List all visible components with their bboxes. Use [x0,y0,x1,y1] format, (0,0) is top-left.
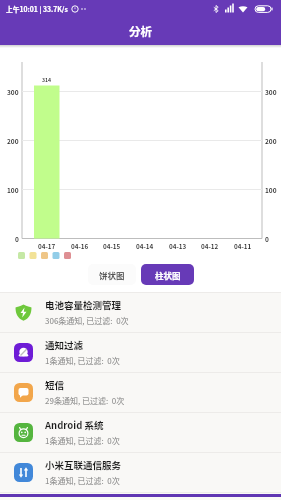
staticText: 1条通知, 已过滤: 0次 [45,435,120,447]
staticText: 0 [265,234,269,243]
staticText: 100 [7,185,19,194]
staticText: 306条通知, 已过滤: 0次 [45,315,129,327]
staticText: 100 [265,185,277,194]
staticText: 0 [15,234,19,243]
staticText: 柱状图 [155,269,181,281]
button[interactable]: 短信 [0,373,281,413]
staticText: 电池容量检测管理 [45,298,122,312]
staticText: 上午10:01 | 33.7K/s [6,4,68,14]
staticText: 314 [42,76,52,84]
staticText: 300 [265,87,277,96]
staticText: 通知过滤 [45,338,84,352]
staticText: 小米互联通信服务 [45,458,122,472]
staticText: 29条通知, 已过滤: 0次 [45,395,125,407]
button[interactable]: 电池容量检测管理 [0,293,281,333]
button[interactable]: Android 系统 [0,413,281,453]
staticText: 1条通知, 已过滤: 0次 [45,475,120,487]
button[interactable]: 小米互联通信服务 [0,453,281,493]
staticText: 04-12 [201,242,219,251]
staticText: 04-14 [136,242,154,251]
staticText: 04-11 [234,242,252,251]
button[interactable]: 柱状图 [141,264,194,285]
staticText: 300 [7,87,19,96]
staticText: 04-13 [169,242,187,251]
button[interactable]: 通知过滤 [0,333,281,373]
staticText: 短信 [45,378,65,392]
button[interactable]: 饼状图 [88,264,136,285]
staticText: Android 系统 [45,418,104,432]
staticText: 04-16 [71,242,89,251]
staticText: 1条通知, 已过滤: 0次 [45,355,120,367]
staticText: 200 [265,136,277,145]
staticText: 200 [7,136,19,145]
staticText: 分析 [129,23,152,40]
staticText: 04-15 [103,242,121,251]
staticText: 饼状图 [99,269,125,281]
staticText: 04-17 [38,242,56,251]
